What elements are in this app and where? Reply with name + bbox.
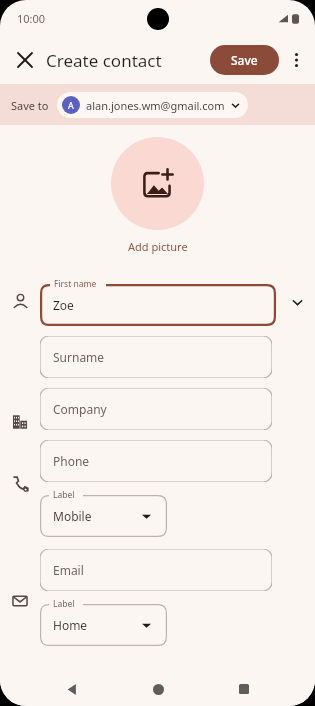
staticText: Create contact bbox=[46, 49, 162, 72]
button[interactable]: Close bbox=[8, 43, 42, 77]
staticText: A bbox=[68, 99, 74, 111]
button[interactable]: Phone bbox=[40, 440, 272, 482]
staticText: First name bbox=[54, 278, 97, 290]
staticText: Zoe bbox=[53, 297, 74, 313]
staticText: Add picture bbox=[128, 239, 188, 254]
staticText: Save bbox=[231, 52, 258, 68]
staticText: Label bbox=[53, 489, 75, 501]
staticText: Mobile bbox=[53, 508, 92, 524]
button[interactable]: Save bbox=[210, 45, 279, 75]
button[interactable]: A bbox=[57, 92, 248, 118]
staticText: Save to bbox=[11, 98, 49, 113]
staticText: alan.jones.wm@gmail.com bbox=[86, 98, 225, 113]
staticText: Email bbox=[53, 562, 84, 578]
button[interactable]: Surname bbox=[40, 336, 272, 378]
staticText: Home bbox=[53, 617, 88, 633]
button[interactable]: Back bbox=[56, 674, 86, 704]
button[interactable]: More options bbox=[280, 44, 312, 76]
button[interactable]: Home bbox=[40, 604, 167, 646]
button[interactable]: Zoe bbox=[40, 284, 276, 326]
button[interactable]: Recent apps bbox=[229, 674, 259, 704]
staticText: Company bbox=[53, 401, 107, 417]
button[interactable]: Expand name fields bbox=[280, 285, 315, 320]
staticText: Surname bbox=[53, 349, 105, 365]
button[interactable]: Mobile bbox=[40, 495, 167, 537]
staticText: Label bbox=[53, 598, 75, 610]
button[interactable]: Email bbox=[40, 549, 272, 591]
button[interactable]: Add picture bbox=[111, 137, 204, 230]
button[interactable]: Company bbox=[40, 388, 272, 430]
button[interactable]: Home bbox=[143, 674, 173, 704]
staticText: Phone bbox=[53, 453, 90, 469]
staticText: 10:00 bbox=[17, 11, 46, 26]
